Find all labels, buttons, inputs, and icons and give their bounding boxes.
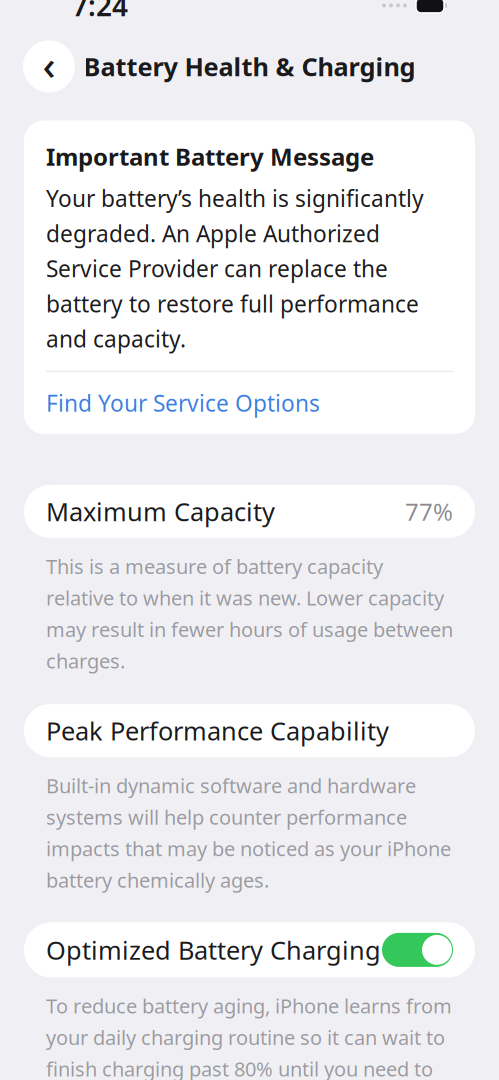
button[interactable]: Find Your Service Options bbox=[46, 372, 453, 434]
staticText: To reduce battery aging, iPhone learns f… bbox=[46, 992, 452, 1080]
staticText: Find Your Service Options bbox=[46, 388, 320, 418]
staticText: 7:24 bbox=[72, 0, 128, 24]
staticText: Optimized Battery Charging bbox=[46, 933, 381, 967]
staticText: Peak Performance Capability bbox=[46, 714, 389, 747]
staticText: 77% bbox=[405, 495, 453, 527]
staticText: Battery Health & Charging bbox=[83, 50, 415, 83]
button[interactable]: Back bbox=[23, 38, 75, 95]
staticText: This is a measure of battery capacity re… bbox=[46, 553, 453, 674]
staticText: Important Battery Message bbox=[46, 140, 374, 172]
staticText: Your battery’s health is significantly d… bbox=[46, 183, 424, 354]
button[interactable]: Peak Performance Capability bbox=[24, 704, 475, 757]
staticText: Built-in dynamic software and hardware s… bbox=[46, 772, 451, 893]
staticText: Maximum Capacity bbox=[46, 495, 275, 528]
button[interactable]: Optimized Battery Charging bbox=[24, 922, 475, 977]
staticText: ‹ bbox=[42, 38, 55, 91]
